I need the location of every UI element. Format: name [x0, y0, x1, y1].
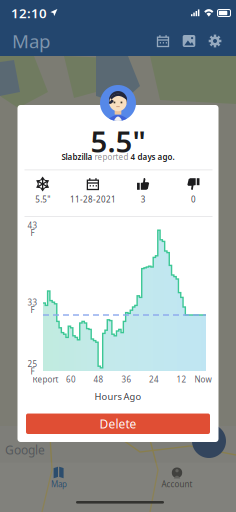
staticText: F: [30, 228, 34, 238]
staticText: reported: [94, 152, 130, 162]
staticText: 3: [141, 194, 146, 205]
staticText: 48: [93, 374, 103, 385]
staticText: 0: [191, 194, 196, 205]
staticText: F: [30, 366, 34, 377]
staticText: Report: [32, 374, 58, 385]
staticText: 60: [66, 374, 76, 385]
staticText: Account: [161, 479, 192, 489]
button[interactable]: Photos: [176, 28, 202, 54]
staticText: 12:10: [11, 4, 47, 22]
staticText: 25: [27, 359, 37, 369]
staticText: Google: [5, 442, 45, 458]
staticText: 4 days ago.: [130, 152, 174, 162]
staticText: F: [30, 305, 34, 315]
staticText: Hours Ago: [94, 390, 141, 403]
button[interactable]: Map: [0, 463, 118, 497]
staticText: Slabzilla: [61, 152, 94, 162]
staticText: Map: [51, 479, 67, 489]
button[interactable]: Delete: [26, 413, 210, 434]
staticText: Now: [194, 374, 211, 385]
button[interactable]: Account: [118, 463, 236, 497]
staticText: 24: [149, 374, 159, 385]
staticText: 12: [176, 374, 186, 385]
staticText: 5.5": [90, 121, 145, 160]
staticText: Delete: [99, 416, 136, 432]
staticText: Map: [12, 29, 50, 53]
staticText: 36: [121, 374, 131, 385]
staticText: 5.5": [35, 194, 50, 205]
staticText: 43: [27, 220, 37, 231]
staticText: 11-28-2021: [70, 194, 116, 205]
staticText: 33: [27, 297, 37, 308]
button[interactable]: Calendar: [150, 28, 176, 54]
button[interactable]: Settings: [202, 28, 228, 54]
